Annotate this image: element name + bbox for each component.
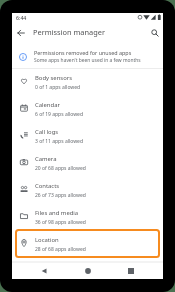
- button[interactable]: Back: [12, 24, 29, 41]
- staticText: Camera: [35, 155, 57, 163]
- staticText: Permissions removed for unused apps: [34, 49, 132, 56]
- staticText: 26 of 73 apps allowed: [35, 192, 86, 199]
- staticText: 6:44: [16, 14, 27, 21]
- staticText: Location: [35, 236, 59, 244]
- button[interactable]: Permissions removed for unused apps: [12, 44, 163, 68]
- staticText: Calendar: [35, 101, 60, 109]
- button[interactable]: Camera: [12, 148, 163, 175]
- button[interactable]: Home: [76, 263, 100, 279]
- staticText: 3 of 11 apps allowed: [35, 138, 84, 145]
- staticText: 6 of 19 apps allowed: [35, 111, 84, 118]
- button[interactable]: Call logs: [12, 121, 163, 148]
- staticText: Call logs: [35, 128, 59, 136]
- staticText: Contacts: [35, 182, 60, 190]
- button[interactable]: Recents: [119, 263, 143, 279]
- staticText: Body sensors: [35, 74, 72, 82]
- button[interactable]: Body sensors: [12, 67, 163, 94]
- staticText: 0 of 1 apps allowed: [35, 84, 81, 91]
- button[interactable]: Contacts: [12, 175, 163, 202]
- button[interactable]: Files and media: [12, 202, 163, 229]
- staticText: 20 of 68 apps allowed: [35, 165, 86, 172]
- staticText: 36 of 98 apps allowed: [35, 219, 86, 226]
- staticText: Files and media: [35, 209, 79, 217]
- staticText: Some apps haven't been used in a few mon…: [34, 57, 141, 64]
- staticText: Permission manager: [33, 27, 105, 37]
- button[interactable]: Location: [12, 229, 163, 256]
- button[interactable]: Back: [32, 263, 56, 279]
- button[interactable]: Calendar: [12, 94, 163, 121]
- button[interactable]: Search: [146, 24, 163, 41]
- staticText: 28 of 68 apps allowed: [35, 246, 86, 253]
